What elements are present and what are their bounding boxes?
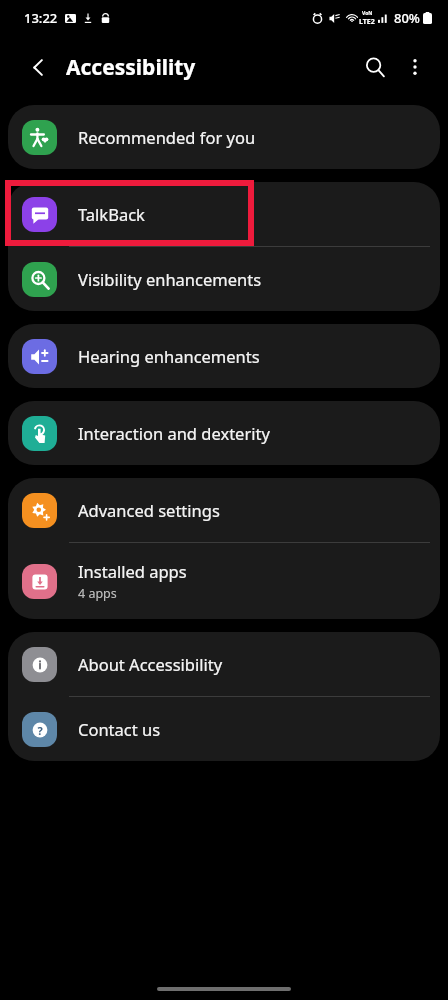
button[interactable]: About Accessibility: [8, 632, 440, 696]
staticText: Hearing enhancements: [78, 345, 260, 367]
staticText: 13:22: [24, 9, 58, 27]
staticText: 80%: [394, 9, 420, 27]
button[interactable]: Hearing enhancements: [8, 324, 440, 388]
staticText: TalkBack: [78, 203, 145, 225]
button[interactable]: TalkBack: [8, 182, 440, 246]
staticText: Advanced settings: [78, 499, 220, 521]
staticText: VoN: [362, 10, 373, 17]
staticText: ?: [37, 723, 43, 738]
button[interactable]: Visibility enhancements: [8, 247, 440, 311]
button[interactable]: Interaction and dexterity: [8, 401, 440, 465]
button[interactable]: ?: [8, 697, 440, 761]
button[interactable]: Advanced settings: [8, 478, 440, 542]
button[interactable]: Search: [355, 47, 395, 87]
staticText: About Accessibility: [78, 653, 223, 675]
staticText: Accessibility: [66, 53, 196, 82]
button[interactable]: Recommended for you: [8, 105, 440, 169]
button[interactable]: More options: [395, 47, 435, 87]
staticText: Visibility enhancements: [78, 268, 262, 290]
button[interactable]: Installed apps: [8, 543, 440, 619]
staticText: LTE2: [359, 17, 375, 27]
staticText: Contact us: [78, 718, 161, 740]
staticText: Recommended for you: [78, 126, 256, 148]
button[interactable]: Navigate back: [21, 50, 55, 84]
staticText: 4 apps: [78, 585, 117, 602]
staticText: Installed apps: [78, 560, 187, 582]
staticText: Interaction and dexterity: [78, 422, 270, 444]
